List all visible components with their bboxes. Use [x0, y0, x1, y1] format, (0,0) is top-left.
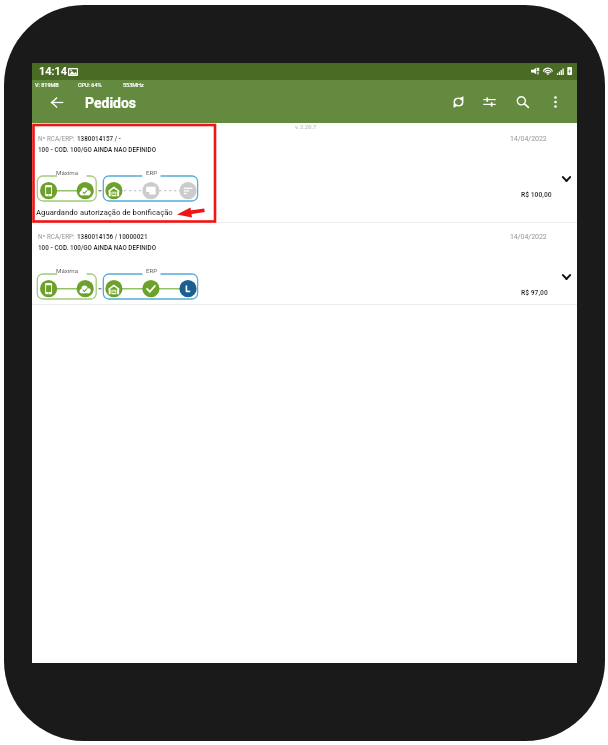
button[interactable]: Sync	[442, 86, 474, 117]
staticText: Nº RCA/ERP:	[38, 233, 77, 240]
button[interactable]: Nº RCA/ERP:	[32, 125, 577, 222]
staticText: 14:14	[39, 65, 67, 78]
button[interactable]: More options	[539, 86, 571, 117]
staticText: 14/04/2022	[510, 135, 547, 143]
staticText: Nº RCA/ERP:	[38, 135, 77, 142]
staticText: V: 819MB	[35, 82, 59, 88]
staticText: 100 - COD. 100/GO AINDA NAO DEFINIDO	[38, 146, 156, 153]
button[interactable]: Search	[506, 86, 538, 117]
staticText: R$ 100,00	[521, 191, 552, 199]
staticText: 100 - COD. 100/GO AINDA NAO DEFINIDO	[38, 244, 156, 251]
button[interactable]: Expand order	[550, 168, 583, 189]
staticText: 553MHz	[123, 82, 144, 88]
button[interactable]: Expand order	[550, 266, 583, 287]
staticText: v. 2.20.7	[295, 124, 317, 131]
staticText: Aguardando autorização de bonificação	[36, 208, 173, 217]
staticText: Máxima	[56, 267, 79, 274]
staticText: 14/04/2022	[510, 233, 547, 241]
button[interactable]: Filter	[473, 86, 505, 117]
staticText: 1380014157 / -	[77, 135, 122, 142]
staticText: Máxima	[56, 169, 79, 176]
button[interactable]: Back	[39, 87, 75, 118]
staticText: CPU: 64%	[78, 82, 102, 88]
button[interactable]: Nº RCA/ERP:	[32, 223, 577, 304]
staticText: ERP	[146, 169, 158, 176]
staticText: ERP	[146, 267, 158, 274]
staticText: 1380014156 / 10000021	[77, 233, 148, 240]
staticText: Pedidos	[85, 95, 137, 111]
staticText: R$ 97,00	[521, 289, 548, 297]
